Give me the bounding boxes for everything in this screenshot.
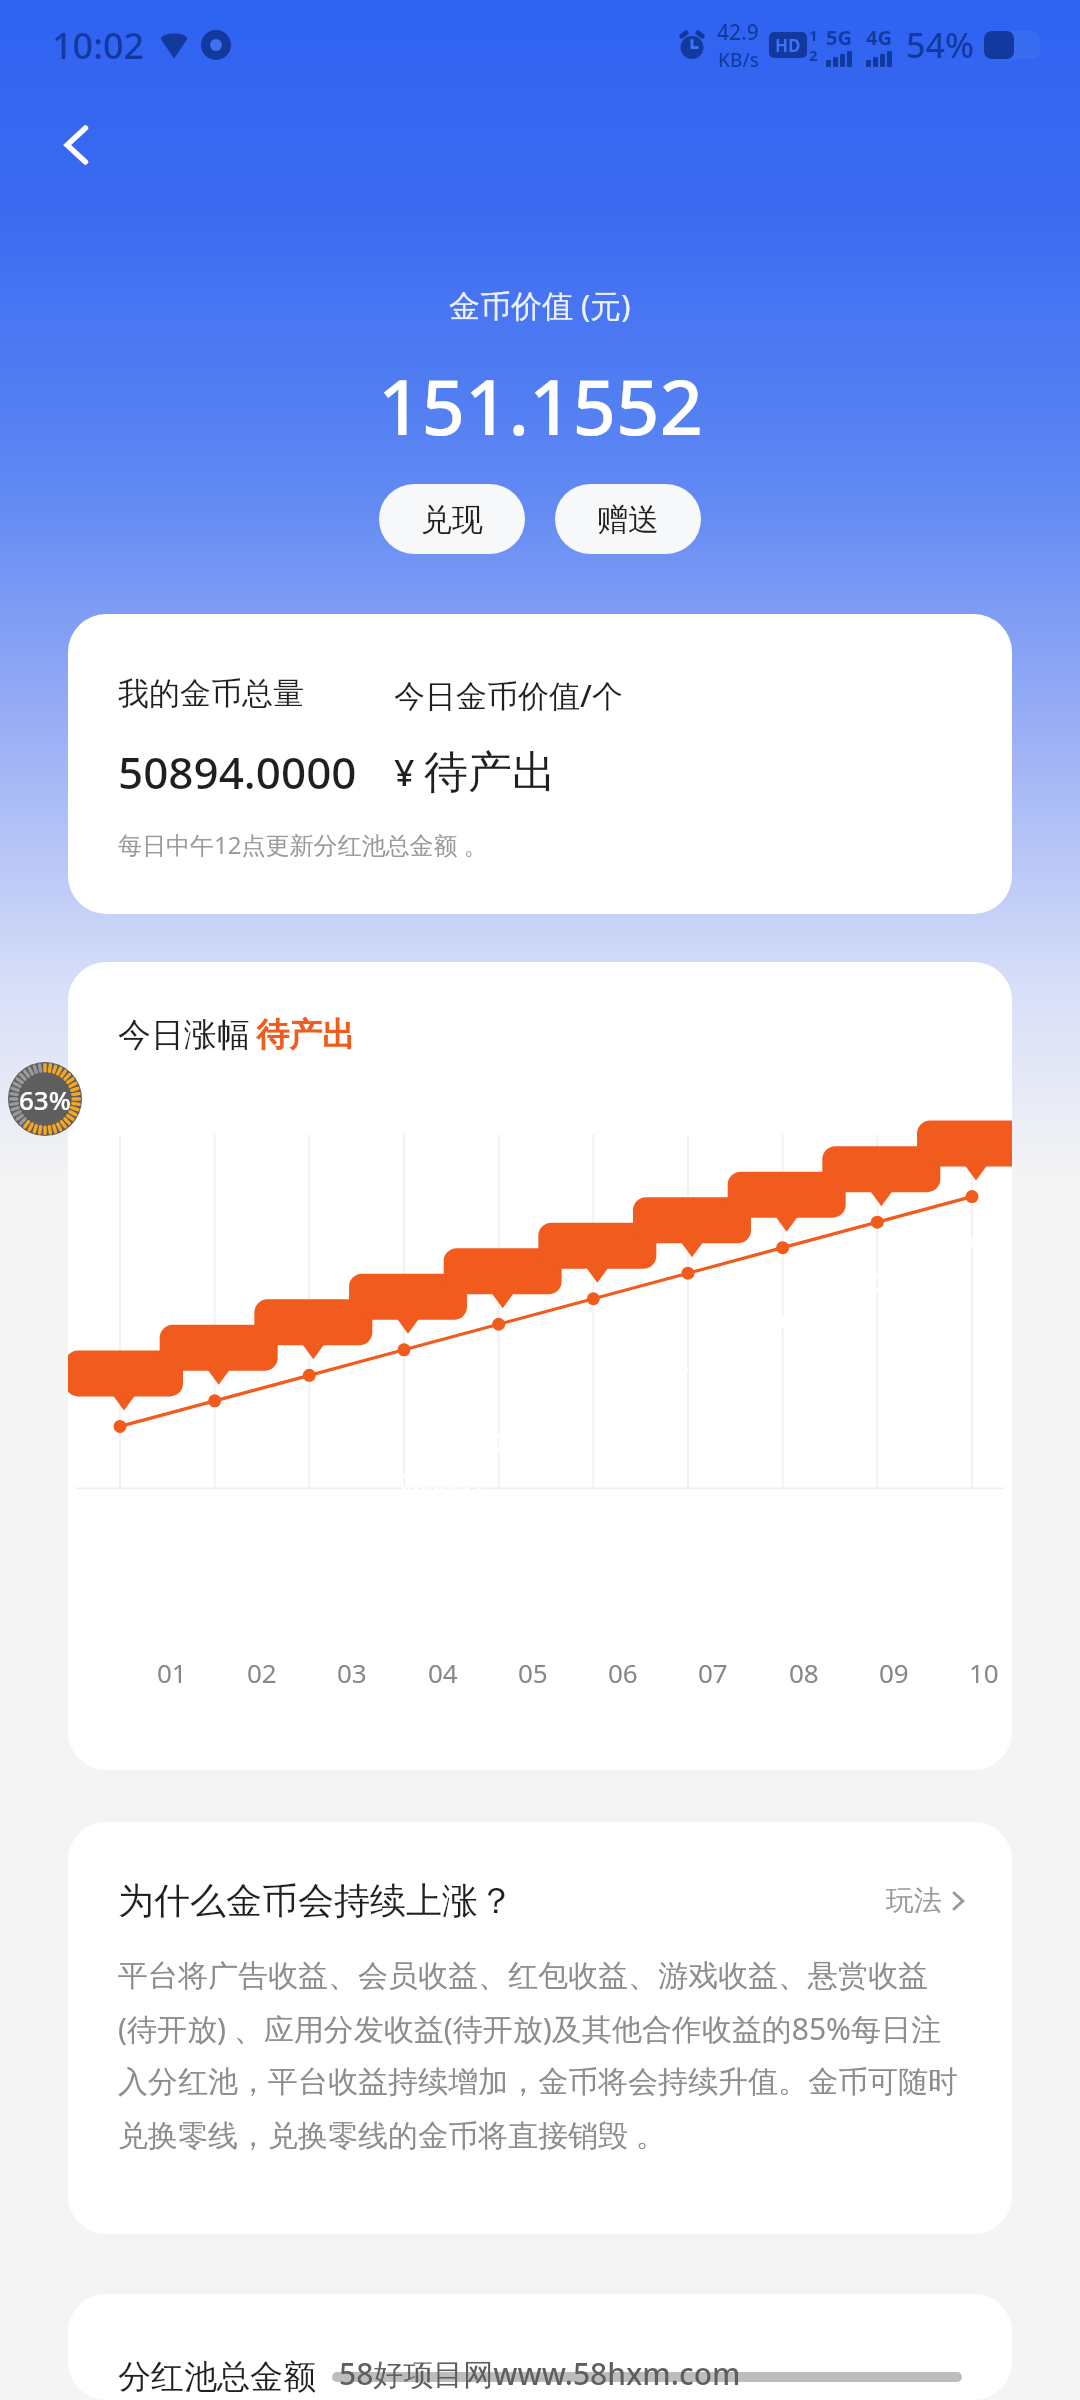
staticText: 06: [608, 1655, 638, 1690]
staticText: ¥: [394, 748, 424, 797]
staticText: 03: [337, 1655, 367, 1690]
button[interactable]: 兑现: [379, 484, 525, 554]
staticText: 63%: [19, 1082, 71, 1117]
staticText: 平台将广告收益、会员收益、红包收益、游戏收益、悬赏收益(待开放) 、应用分发收益…: [118, 1957, 966, 2155]
staticText: 04: [428, 1655, 458, 1690]
staticText: 02: [247, 1655, 277, 1690]
staticText: 10:02: [52, 21, 145, 70]
staticText: 2: [809, 45, 818, 65]
staticText: 分红池总金额: [118, 2356, 316, 2398]
staticText: 10: [969, 1655, 999, 1690]
button[interactable]: Back: [40, 107, 116, 183]
staticText: 5G: [826, 24, 852, 51]
staticText: KB/s: [718, 47, 759, 73]
staticText: 金币价值 (元): [449, 284, 631, 326]
staticText: 4G: [866, 24, 892, 51]
staticText: 每日中午12点更新分红池总金额 。: [118, 828, 488, 861]
staticText: 兑现: [421, 500, 483, 539]
staticText: 待产出: [256, 1014, 355, 1056]
staticText: 58好项目网www.58hxm.com: [339, 2353, 741, 2394]
staticText: 1: [809, 25, 818, 45]
button[interactable]: 玩法: [886, 1883, 966, 1918]
staticText: 为什么金币会持续上涨？: [118, 1878, 886, 1923]
staticText: 151.1552: [378, 354, 703, 458]
staticText: 08: [789, 1655, 819, 1690]
staticText: HD: [775, 34, 801, 57]
staticText: 50894.0000: [118, 742, 394, 802]
staticText: 01: [157, 1655, 187, 1690]
staticText: 今日涨幅: [118, 1014, 250, 1056]
staticText: 42.9: [717, 18, 759, 47]
button[interactable]: 赠送: [555, 484, 701, 554]
staticText: 待产出: [424, 745, 556, 800]
staticText: 赠送: [597, 500, 659, 539]
staticText: 07: [698, 1655, 728, 1690]
staticText: 09: [879, 1655, 909, 1690]
staticText: 54%: [906, 22, 974, 68]
staticText: 我的金币总量: [118, 674, 394, 713]
staticText: 今日金币价值/个: [394, 674, 623, 716]
staticText: 05: [518, 1655, 548, 1690]
staticText: 玩法: [886, 1883, 942, 1918]
